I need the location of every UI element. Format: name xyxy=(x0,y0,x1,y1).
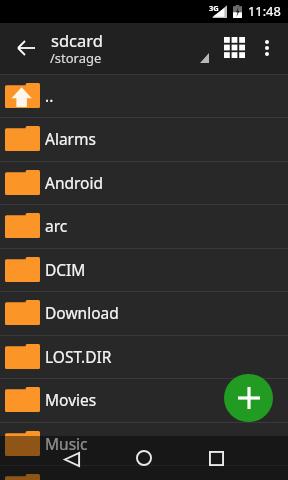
button[interactable]: More options xyxy=(254,30,280,66)
button[interactable]: arc xyxy=(0,205,288,248)
button[interactable]: Home xyxy=(120,436,168,480)
staticText: arc xyxy=(45,215,68,236)
staticText: 11:48 xyxy=(248,2,281,19)
button[interactable]: .. xyxy=(0,75,288,117)
button[interactable]: Movies xyxy=(0,379,288,422)
staticText: Movies xyxy=(45,389,97,410)
button[interactable]: DCIM xyxy=(0,249,288,291)
button[interactable]: Add xyxy=(224,374,273,422)
staticText: Android xyxy=(45,172,104,193)
staticText: 3G xyxy=(209,3,219,13)
staticText: LOST.DIR xyxy=(45,346,112,367)
button[interactable]: Back xyxy=(48,436,96,480)
staticText: Alarms xyxy=(45,128,96,149)
button[interactable]: Grid view xyxy=(215,29,253,65)
button[interactable]: Download xyxy=(0,292,288,335)
button[interactable]: Back xyxy=(8,23,44,73)
staticText: Download xyxy=(45,302,119,323)
button[interactable]: Notifications xyxy=(0,466,288,480)
button[interactable]: LOST.DIR xyxy=(0,336,288,378)
staticText: DCIM xyxy=(45,259,86,280)
button[interactable]: Recents xyxy=(192,436,240,480)
button[interactable]: Music xyxy=(0,423,288,465)
staticText: sdcard xyxy=(51,29,103,51)
staticText: .. xyxy=(45,85,54,106)
button[interactable]: Alarms xyxy=(0,118,288,161)
staticText: Music xyxy=(45,433,88,454)
button[interactable]: Android xyxy=(0,162,288,204)
staticText: /storage xyxy=(50,49,102,67)
